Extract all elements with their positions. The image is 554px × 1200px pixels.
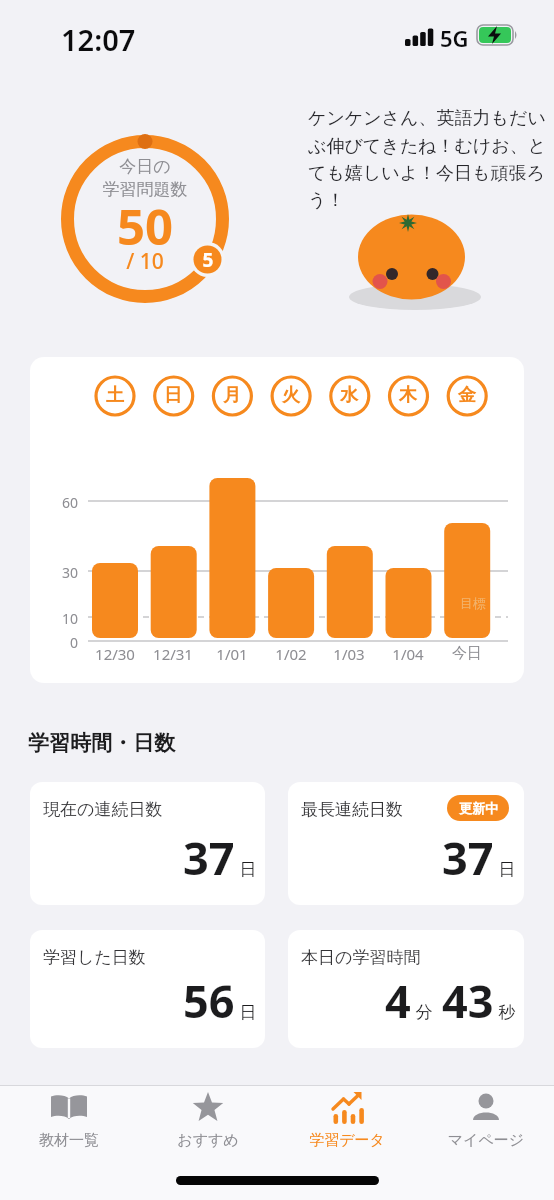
staticText: 37 [442, 827, 494, 888]
staticText: 12/30 [86, 644, 144, 664]
staticText: 今日の [61, 156, 229, 177]
staticText: 本日の学習時間 [301, 947, 511, 968]
staticText: マイページ [431, 1131, 541, 1150]
staticText: 学習時間・日数 [28, 730, 328, 756]
staticText: 1/01 [203, 644, 261, 664]
staticText: 現在の連続日数 [43, 799, 252, 820]
staticText: 60 [48, 493, 78, 512]
staticText: 今日 [438, 644, 496, 663]
staticText: 日 [235, 1000, 257, 1023]
staticText: 0 [48, 633, 78, 652]
staticText: 最長連続日数 [301, 799, 511, 820]
button[interactable]: おすすめ [153, 1089, 263, 1153]
staticText: 50 [61, 193, 229, 260]
button[interactable]: 学習した日数 [30, 930, 265, 1048]
staticText: 金 [448, 384, 486, 407]
staticText: 学習データ [292, 1131, 402, 1150]
staticText: 1/04 [379, 644, 437, 664]
staticText: 土 [96, 384, 134, 407]
staticText: ケンケンさん、英語力もだい ぶ伸びてきたね！むけお、と ても嬉しいよ！今日も頑張… [308, 107, 547, 211]
staticText: 更新中 [459, 800, 498, 816]
button[interactable]: マイページ [431, 1089, 541, 1153]
staticText: 30 [48, 563, 78, 582]
staticText: 水 [330, 384, 368, 407]
staticText: 日 [494, 857, 516, 880]
staticText: 火 [272, 384, 310, 407]
staticText: 56 [183, 970, 235, 1031]
staticText: 5G [440, 23, 480, 53]
staticText: 目標 [460, 595, 500, 611]
staticText: 37 [183, 827, 235, 888]
staticText: 12/31 [144, 644, 202, 664]
staticText: 木 [389, 384, 427, 407]
staticText: 日 [154, 384, 192, 407]
staticText: 分 [411, 1000, 442, 1023]
staticText: / 10 [61, 247, 229, 276]
staticText: 秒 [494, 1000, 516, 1023]
button[interactable]: 現在の連続日数 [30, 782, 265, 905]
button[interactable]: 学習データ [292, 1089, 402, 1153]
staticText: 日 [235, 857, 257, 880]
staticText: 月 [213, 384, 251, 407]
staticText: 1/03 [320, 644, 378, 664]
staticText: 4 [385, 970, 411, 1031]
staticText: 学習問題数 [61, 179, 229, 200]
staticText: 43 [442, 970, 494, 1031]
staticText: おすすめ [153, 1131, 263, 1150]
staticText: 学習した日数 [43, 947, 252, 968]
staticText: 12:07 [61, 20, 151, 59]
staticText: 10 [48, 609, 78, 628]
staticText: 教材一覧 [14, 1131, 124, 1150]
button[interactable]: 最長連続日数 [288, 782, 524, 905]
button[interactable]: 教材一覧 [14, 1089, 124, 1153]
staticText: 1/02 [262, 644, 320, 664]
staticText: 5 [193, 247, 223, 273]
button[interactable]: 本日の学習時間 [288, 930, 524, 1048]
